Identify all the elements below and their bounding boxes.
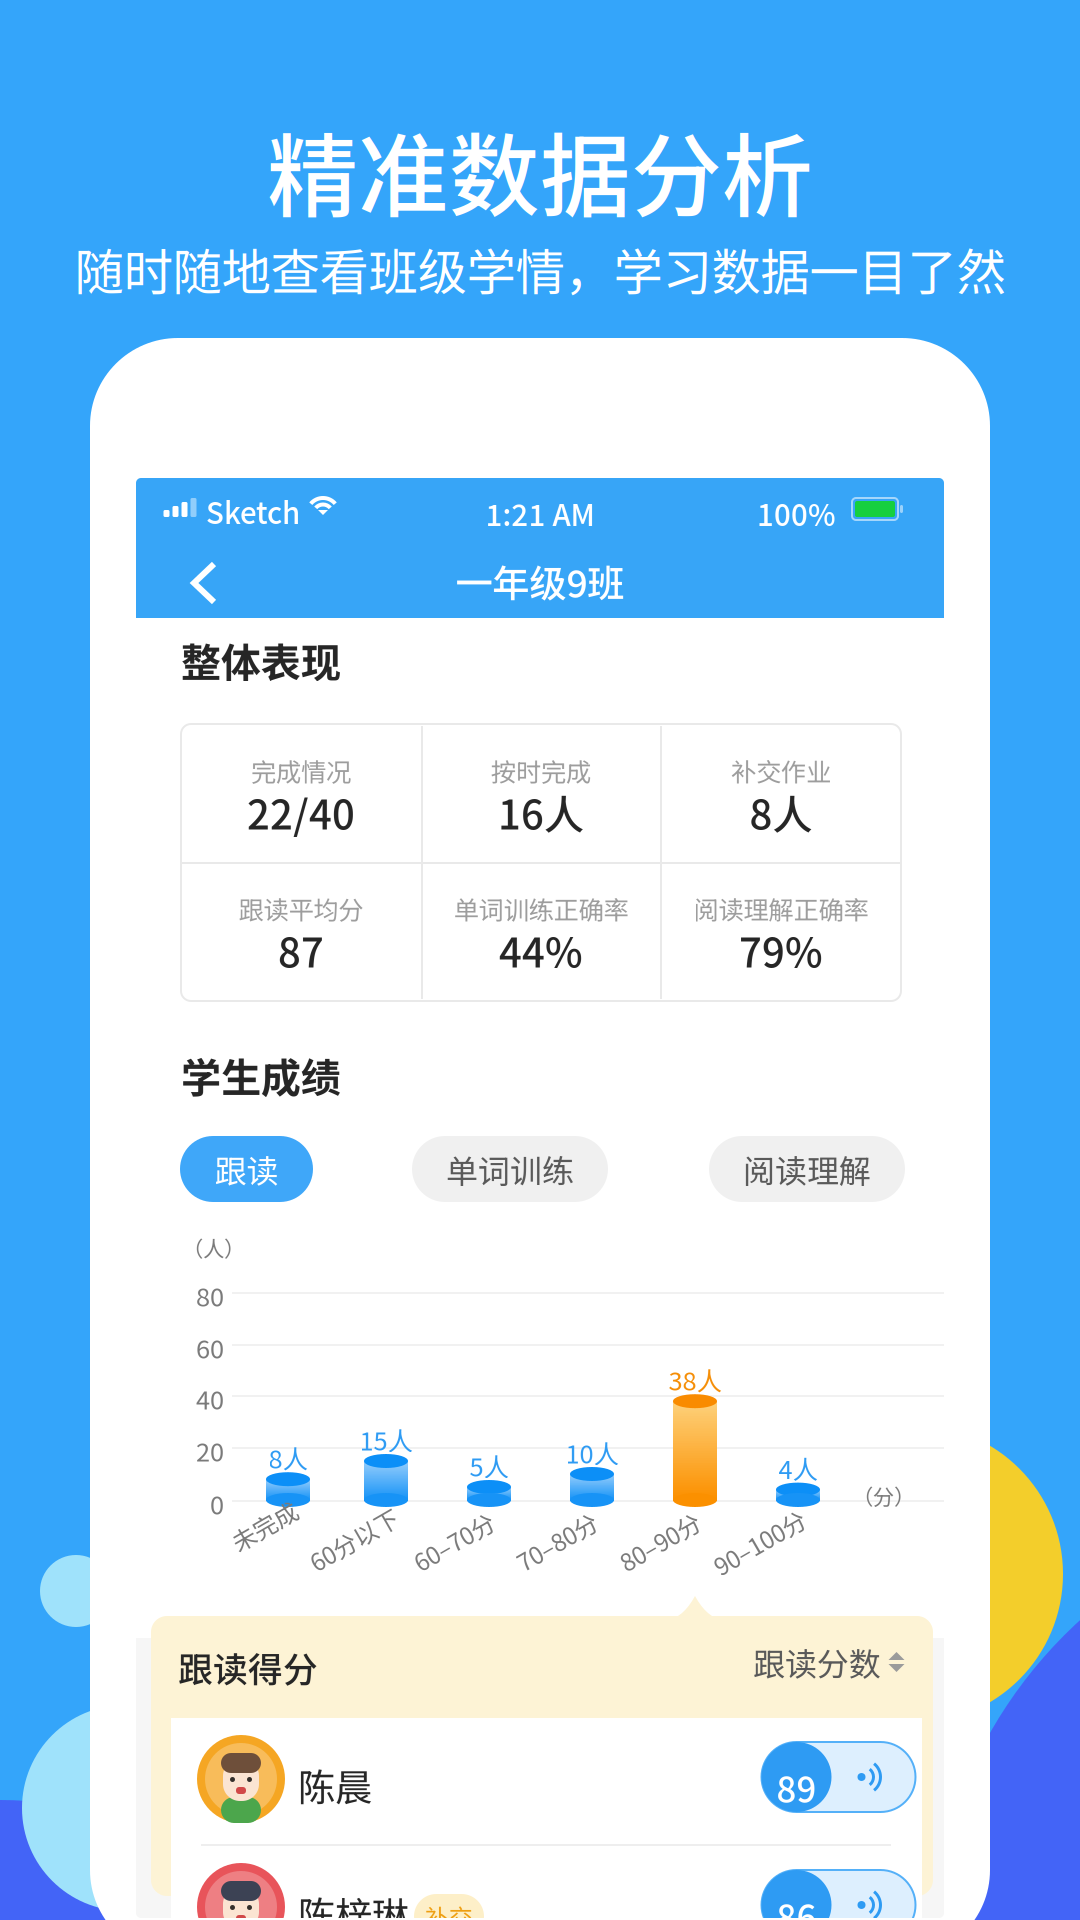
staticText: 89 [776, 1762, 816, 1812]
staticText: 8人 [749, 783, 812, 841]
staticText: 陈晨 [298, 1758, 372, 1812]
button[interactable]: 陈梓琳 [171, 1846, 922, 1920]
staticText: 60–70分 [424, 1544, 513, 1579]
staticText: 跟读得分 [178, 1642, 318, 1692]
staticText: 跟读分数 [753, 1639, 881, 1685]
staticText: 60分以下 [320, 1544, 418, 1579]
staticText: 补交 [425, 1899, 473, 1920]
staticText: 60 [196, 1329, 224, 1366]
staticText: 80–90分 [630, 1544, 719, 1579]
button[interactable]: 单词训练 [412, 1136, 608, 1202]
staticText: 8人 [268, 1439, 307, 1476]
staticText: 未完成 [242, 1524, 314, 1559]
staticText: 阅读理解正确率 [693, 890, 868, 927]
staticText: 整体表现 [181, 631, 341, 689]
staticText: 一年级9班 [455, 554, 624, 608]
staticText: 20 [196, 1432, 224, 1469]
staticText: 40 [196, 1380, 224, 1417]
staticText: 1:21 AM [485, 492, 594, 534]
button[interactable]: 跟读 [180, 1136, 313, 1202]
staticText: （分） [852, 1480, 915, 1511]
staticText: 陈梓琳 [298, 1886, 409, 1920]
staticText: 4人 [778, 1450, 817, 1486]
staticText: 16人 [498, 783, 584, 841]
staticText: 0 [210, 1485, 224, 1522]
staticText: 44% [499, 921, 583, 979]
staticText: 90–100分 [724, 1548, 826, 1583]
staticText: 38人 [668, 1361, 721, 1398]
staticText: 100% [757, 492, 836, 534]
staticText: 按时完成 [491, 752, 591, 789]
staticText: 跟读平均分 [238, 890, 363, 927]
staticText: 86 [776, 1890, 816, 1920]
staticText: 完成情况 [251, 752, 351, 789]
staticText: 22/40 [247, 783, 355, 841]
staticText: 10人 [565, 1434, 618, 1471]
staticText: 精准数据分析 [267, 104, 813, 235]
staticText: 单词训练 [446, 1146, 574, 1192]
staticText: 15人 [359, 1421, 412, 1458]
staticText: 学生成绩 [181, 1046, 341, 1104]
staticText: 单词训练正确率 [453, 890, 628, 927]
staticText: 阅读理解 [743, 1146, 871, 1192]
staticText: （人） [182, 1232, 245, 1263]
button[interactable]: 阅读理解 [709, 1136, 905, 1202]
staticText: 70–80分 [527, 1544, 616, 1579]
staticText: 79% [739, 921, 823, 979]
staticText: 80 [196, 1277, 224, 1314]
staticText: 随时随地查看班级学情，学习数据一目了然 [74, 233, 1005, 304]
staticText: 补交作业 [731, 752, 831, 789]
button[interactable]: Back [180, 558, 236, 608]
staticText: 87 [278, 921, 324, 979]
staticText: 跟读 [214, 1146, 278, 1192]
staticText: Sketch [206, 490, 300, 532]
button[interactable]: 陈晨 [171, 1718, 922, 1844]
staticText: 5人 [469, 1447, 508, 1484]
